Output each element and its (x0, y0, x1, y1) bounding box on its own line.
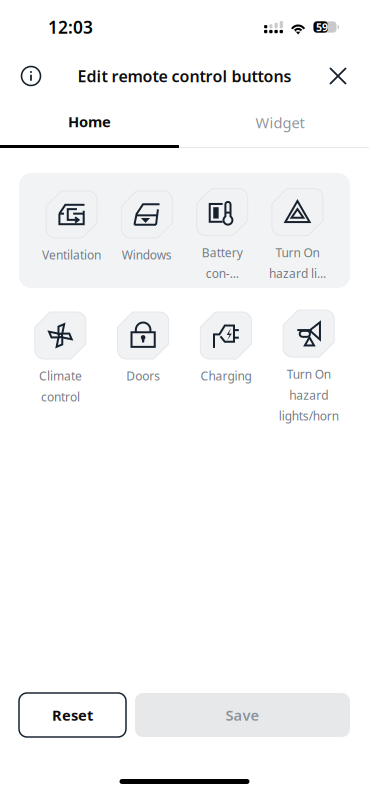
staticText: Turn On (287, 366, 331, 382)
staticText: Ventilation (42, 247, 101, 263)
button[interactable]: Reset (19, 693, 126, 737)
button[interactable]: Ventilation (34, 191, 109, 279)
staticText: Widget (255, 113, 304, 132)
staticText: Turn On (275, 245, 319, 260)
staticText: hazard li... (269, 265, 326, 281)
button[interactable]: Save (135, 693, 350, 737)
staticText: con-... (206, 265, 239, 281)
staticText: Doors (126, 368, 160, 384)
button[interactable]: Home (0, 98, 179, 148)
staticText: Windows (122, 247, 172, 263)
staticText: Climate (39, 368, 82, 384)
staticText: Battery (202, 245, 243, 260)
button[interactable]: Turn On (267, 310, 350, 424)
button[interactable]: Widget (179, 98, 369, 148)
staticText: Edit remote control buttons (77, 65, 291, 87)
button[interactable]: Doors (102, 312, 185, 422)
staticText: control (41, 389, 80, 405)
button[interactable]: Battery (184, 189, 260, 281)
staticText: hazard (289, 387, 328, 403)
staticText: Home (68, 112, 111, 131)
staticText: Charging (200, 368, 251, 384)
button[interactable]: Close (320, 58, 356, 94)
staticText: Reset (52, 705, 93, 725)
button[interactable]: Windows (109, 191, 184, 279)
staticText: lights/horn (279, 408, 339, 424)
button[interactable]: Charging (184, 312, 267, 422)
staticText: Save (225, 705, 259, 725)
button[interactable]: Information (13, 58, 49, 94)
staticText: 59 (316, 20, 328, 34)
button[interactable]: Climate (19, 312, 102, 422)
staticText: 12:03 (48, 15, 93, 38)
button[interactable]: Turn On (260, 189, 335, 281)
